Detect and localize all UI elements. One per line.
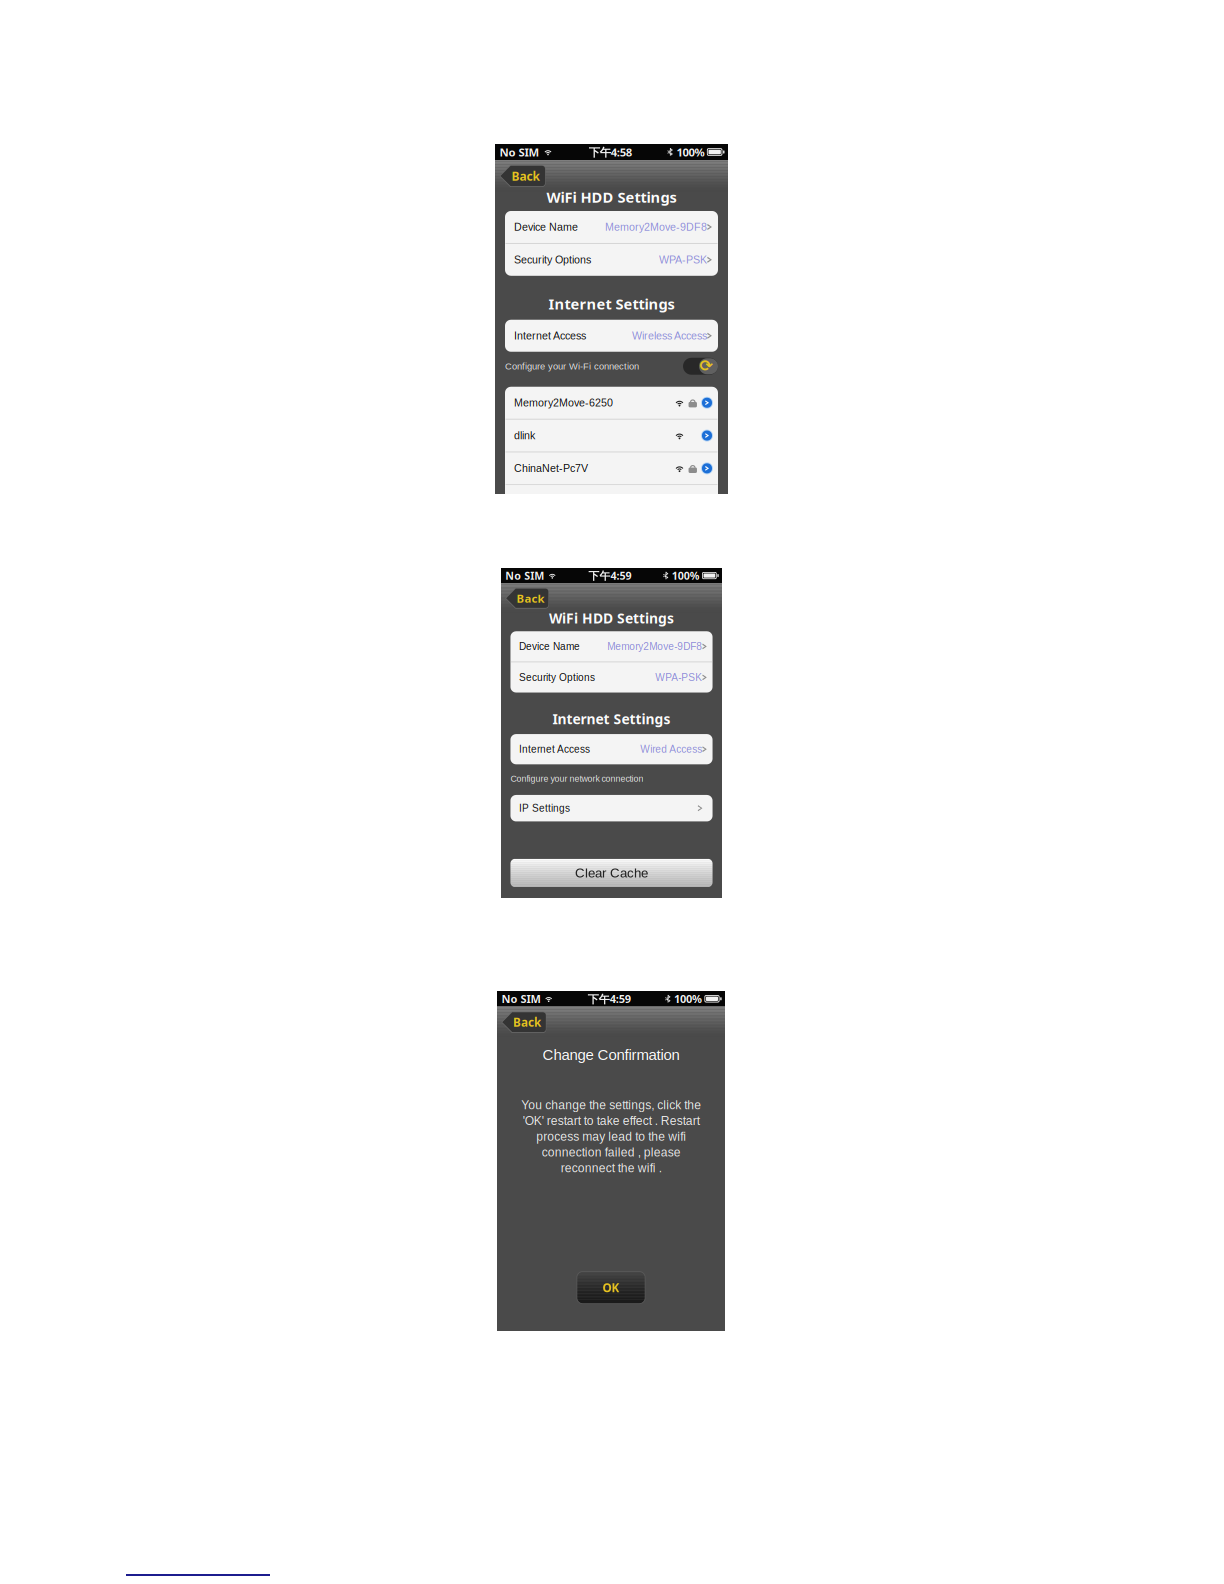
staticText: 100% [676,144,704,160]
button[interactable]: Internet Access [505,320,718,352]
staticText: Back [513,1014,541,1030]
button[interactable]: Security Options [505,244,718,276]
staticText: Clear Cache [575,866,648,880]
button[interactable]: dlink [505,420,718,452]
staticText: ChinaNet-Pc7V [514,462,588,474]
button[interactable]: IP Settings [510,795,712,821]
staticText: Memory2Move-9DF8 [605,221,707,233]
staticText: WiFi HDD Settings [546,187,676,207]
staticText: Internet Access [514,330,586,342]
button[interactable]: Memory2Move-6250 [505,387,718,419]
button[interactable]: Clear Cache [510,859,712,887]
staticText: Internet Settings [548,294,674,314]
staticText: dlink [514,430,535,441]
staticText: Internet Settings [552,709,670,728]
staticText: You change the settings, click the 'OK' … [521,1098,701,1175]
staticText: Security Options [514,254,591,266]
staticText: WPA-PSK [659,254,707,266]
button[interactable]: Back [501,1011,546,1033]
staticText: Memory2Move-6250 [514,397,613,409]
button[interactable]: Refresh network list [683,358,718,375]
staticText: IP Settings [519,803,570,814]
button[interactable]: ChinaNet-Pc7V [505,452,718,484]
button[interactable]: Back [505,588,549,609]
staticText: 100% [672,568,700,583]
staticText: WiFi HDD Settings [549,609,674,627]
staticText: Back [511,168,539,184]
button[interactable]: Security Options [510,662,712,692]
staticText: Memory2Move-9DF8 [607,641,702,652]
button[interactable]: Internet Access [510,734,712,764]
staticText: 下午4:59 [589,568,632,583]
staticText: OK [602,1280,619,1295]
staticText: No SIM [505,568,544,583]
button[interactable]: Back [499,165,545,187]
staticText: Configure your network connection [510,774,643,784]
staticText: Back [517,590,545,606]
button[interactable]: Device Name [510,631,712,661]
staticText: Security Options [519,672,595,683]
staticText: No SIM [499,144,539,160]
staticText: 下午4:58 [589,144,632,160]
button[interactable]: Device Name [505,211,718,243]
staticText: Change Confirmation [542,1047,679,1063]
button[interactable]: OK [577,1271,645,1304]
staticText: 100% [674,991,702,1006]
staticText: Device Name [519,641,580,652]
staticText: Wireless Access [632,330,707,342]
staticText: Device Name [514,221,578,233]
staticText: Wired Access [640,744,702,755]
staticText: Configure your Wi-Fi connection [505,361,639,371]
staticText: Internet Access [519,744,590,755]
staticText: 下午4:59 [588,991,631,1006]
staticText: WPA-PSK [655,672,702,683]
staticText: ⟳ [699,357,712,375]
staticText: No SIM [501,991,540,1006]
